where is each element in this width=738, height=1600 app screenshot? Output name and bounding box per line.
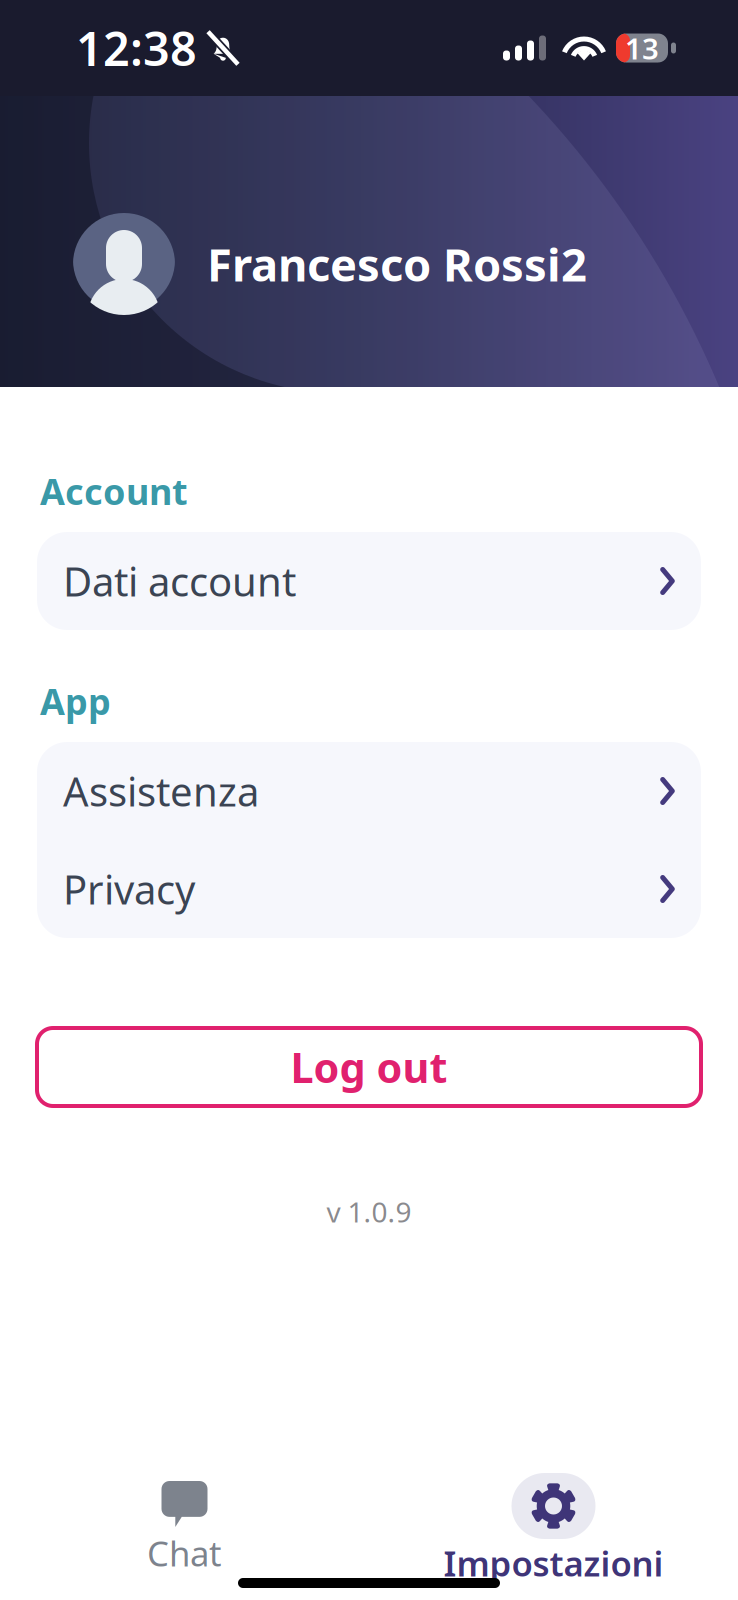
button[interactable]: Impostazioni [369,1440,738,1600]
staticText: Chat [147,1530,222,1576]
staticText: Assistenza [63,764,259,817]
button[interactable]: Dati account [37,532,701,630]
staticText: Privacy [63,862,195,915]
staticText: App [40,677,111,725]
staticText: Log out [290,1040,447,1094]
button[interactable]: Chat [0,1440,369,1600]
staticText: 12:38 [76,17,197,79]
staticText: Dati account [63,554,296,607]
button[interactable]: Assistenza [37,742,701,840]
button[interactable]: Log out [37,1028,701,1106]
staticText: 13 [625,28,659,67]
staticText: Account [40,467,188,515]
staticText: v 1.0.9 [326,1193,411,1230]
staticText: Francesco Rossi2 [207,234,587,294]
button[interactable]: Privacy [37,840,701,938]
staticText: Impostazioni [443,1540,663,1586]
